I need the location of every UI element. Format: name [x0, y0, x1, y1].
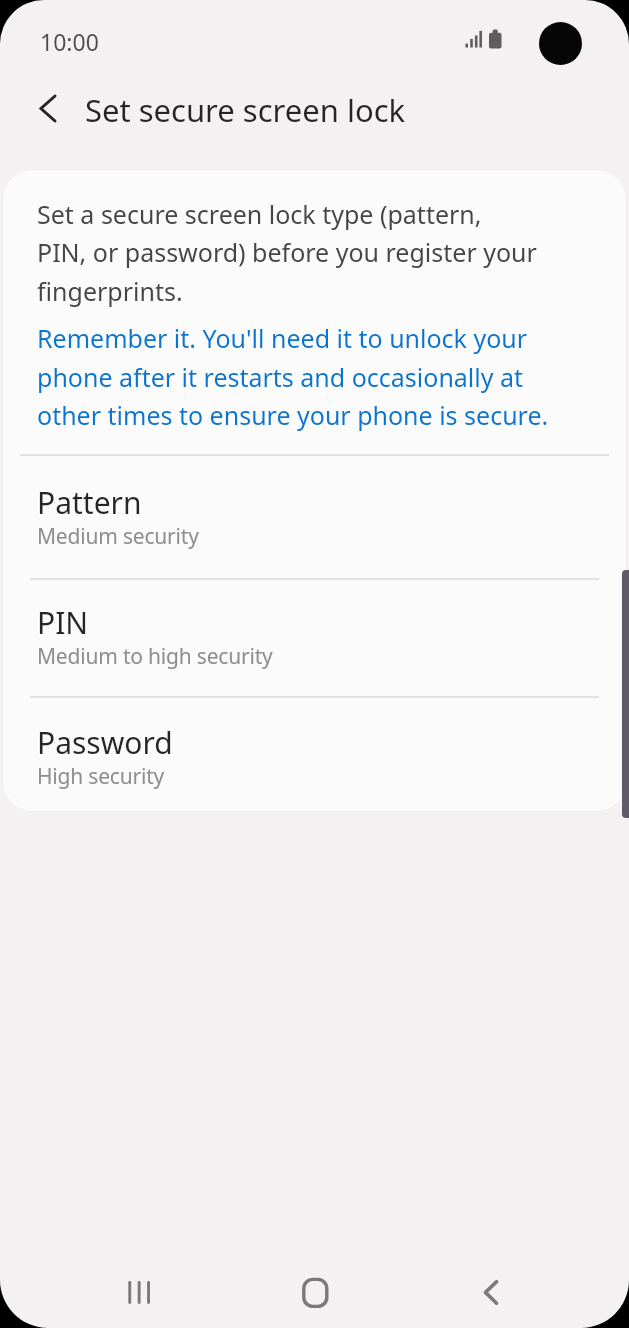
button[interactable] [20, 84, 72, 132]
staticText: Password [37, 722, 173, 763]
staticText: 10:00 [40, 26, 99, 57]
staticText: Set secure screen lock [85, 89, 406, 131]
staticText: Medium to high security [37, 642, 273, 671]
button[interactable] [108, 1260, 188, 1320]
button[interactable] [450, 1260, 530, 1320]
staticText: Medium security [37, 522, 199, 551]
staticText: fingerprints. [37, 274, 183, 308]
button[interactable] [276, 1260, 356, 1320]
button[interactable]: PIN [2, 580, 627, 695]
staticText: High security [37, 762, 165, 791]
staticText: other times to ensure your phone is secu… [37, 398, 549, 432]
staticText: phone after it restarts and occasionally… [37, 360, 524, 394]
staticText: Set a secure screen lock type (pattern, [37, 197, 482, 231]
staticText: Pattern [37, 482, 142, 523]
staticText: PIN, or password) before you register yo… [37, 235, 537, 269]
staticText: PIN [37, 602, 89, 643]
staticText: Remember it. You'll need it to unlock yo… [37, 321, 528, 355]
button[interactable]: Pattern [2, 456, 627, 577]
button[interactable]: Password [2, 698, 627, 811]
